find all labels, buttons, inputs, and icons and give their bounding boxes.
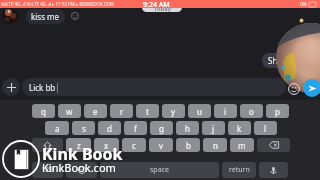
staticText: l <box>264 123 267 134</box>
staticText: return <box>229 165 250 175</box>
staticText: r <box>120 106 124 117</box>
staticText: y <box>171 106 176 117</box>
button[interactable]: l <box>254 121 277 135</box>
staticText: q <box>41 106 46 117</box>
button[interactable]: Backspace <box>257 138 290 152</box>
staticText: u <box>197 106 202 117</box>
staticText: s <box>82 123 86 134</box>
button[interactable]: Lick bb <box>29 78 286 96</box>
staticText: j <box>212 123 215 134</box>
button[interactable]: a <box>45 121 69 135</box>
staticText: Today <box>154 5 171 12</box>
button[interactable]: s <box>72 121 95 135</box>
staticText: c <box>132 140 136 151</box>
button[interactable]: h <box>176 121 199 135</box>
button[interactable]: r <box>110 104 133 118</box>
button[interactable]: Shift <box>32 138 63 152</box>
staticText: k <box>237 123 242 134</box>
button[interactable]: t <box>136 104 159 118</box>
staticText: b <box>186 140 191 151</box>
staticText: a <box>55 123 60 134</box>
staticText: e <box>93 106 98 117</box>
button[interactable]: Return <box>222 162 256 178</box>
staticText: m <box>238 140 246 151</box>
button[interactable]: o <box>240 104 263 118</box>
staticText: f <box>134 123 137 134</box>
button[interactable]: d <box>98 121 121 135</box>
staticText: x <box>104 140 109 151</box>
staticText: n <box>213 140 218 151</box>
button[interactable]: p <box>266 104 289 118</box>
button[interactable]: Voice input <box>259 162 288 178</box>
button[interactable]: w <box>58 104 81 118</box>
staticText: z <box>77 140 81 151</box>
button[interactable]: x <box>94 138 119 152</box>
button[interactable]: g <box>150 121 173 135</box>
staticText: Kink Book <box>42 143 123 165</box>
button[interactable]: m <box>230 138 254 152</box>
staticText: p <box>275 106 280 117</box>
staticText: w <box>66 106 73 117</box>
staticText: i <box>224 106 227 117</box>
staticText: h <box>185 123 190 134</box>
staticText: space <box>150 165 169 175</box>
button[interactable]: Add attachment <box>2 78 20 96</box>
button[interactable]: z <box>66 138 91 152</box>
button[interactable]: Emoji keyboard <box>66 162 97 178</box>
button[interactable]: c <box>122 138 146 152</box>
button[interactable]: q <box>32 104 55 118</box>
button[interactable]: Emoji <box>287 82 300 95</box>
staticText: o <box>249 106 254 117</box>
staticText: d <box>107 123 112 134</box>
button[interactable]: j <box>202 121 225 135</box>
staticText: 123 <box>41 165 54 175</box>
staticText: t <box>146 106 149 117</box>
staticText: v <box>159 140 164 151</box>
staticText: 0% <box>300 1 308 8</box>
button[interactable]: Send <box>303 79 320 97</box>
button[interactable]: y <box>162 104 185 118</box>
staticText: 9:24 AM <box>143 0 170 10</box>
button[interactable]: f <box>124 121 147 135</box>
button[interactable]: v <box>149 138 173 152</box>
staticText: Shit <box>268 55 283 66</box>
button[interactable]: i <box>214 104 237 118</box>
button[interactable]: n <box>203 138 227 152</box>
button[interactable]: b <box>176 138 200 152</box>
staticText: Lick bb <box>29 82 56 93</box>
button[interactable]: Numbers <box>32 162 63 178</box>
button[interactable]: e <box>84 104 107 118</box>
button[interactable]: k <box>228 121 251 135</box>
staticText: g <box>159 123 164 134</box>
staticText: VoLTE 4G .ıl VoLTE 4G .ıl ▸ 11:53 PM ▸ K… <box>1 1 115 7</box>
staticText: KinkBook.com <box>42 160 116 175</box>
staticText: kiss me <box>31 11 60 22</box>
button[interactable]: space <box>100 162 219 178</box>
button[interactable]: u <box>188 104 211 118</box>
